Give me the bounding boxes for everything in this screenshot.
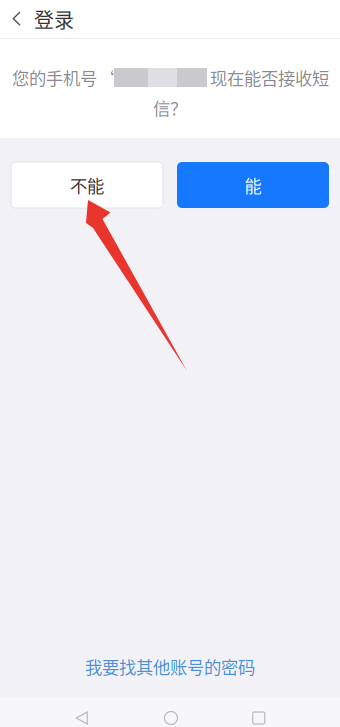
staticText: 我要找其他账号的密码 [85, 654, 255, 679]
button[interactable]: 我要找其他账号的密码 [0, 647, 340, 686]
staticText: 能 [244, 172, 261, 198]
button[interactable]: Back [0, 0, 340, 38]
staticText: 登录 [34, 4, 74, 33]
staticText: 不能 [70, 172, 104, 198]
staticText: 现在能否接收短 [210, 65, 329, 90]
staticText: 您的手机号‘ [12, 65, 114, 90]
button[interactable]: 能 [177, 162, 329, 208]
staticText: 信？ [153, 95, 187, 120]
button[interactable]: 不能 [11, 162, 163, 208]
